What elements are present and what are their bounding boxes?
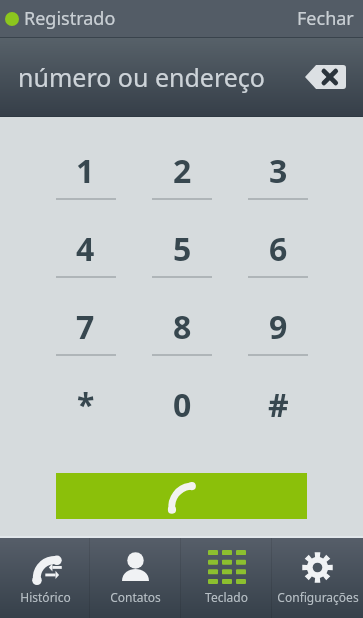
staticText: * xyxy=(77,383,95,427)
staticText: Fechar xyxy=(297,6,354,31)
staticText: Registrado xyxy=(24,6,116,31)
staticText: # xyxy=(268,383,289,427)
staticText: 7 xyxy=(76,305,95,349)
staticText: 6 xyxy=(269,227,288,271)
button[interactable]: Histórico xyxy=(0,538,90,618)
staticText: 5 xyxy=(173,227,192,271)
button[interactable]: 7 xyxy=(37,289,134,367)
staticText: Configurações xyxy=(277,589,359,605)
button[interactable]: 8 xyxy=(134,289,230,367)
button[interactable]: 5 xyxy=(134,211,230,289)
button[interactable]: Teclado xyxy=(181,538,272,618)
staticText: 8 xyxy=(173,305,192,349)
button[interactable]: Contatos xyxy=(90,538,181,618)
button[interactable]: 2 xyxy=(134,133,230,211)
staticText: Contatos xyxy=(110,589,161,605)
staticText: 0 xyxy=(173,383,192,427)
staticText: Teclado xyxy=(205,589,248,605)
button[interactable]: Configurações xyxy=(272,538,363,618)
staticText: 3 xyxy=(269,149,288,193)
button[interactable]: 9 xyxy=(230,289,326,367)
button[interactable]: * xyxy=(37,367,134,445)
button[interactable]: Fechar xyxy=(297,6,354,31)
staticText: Histórico xyxy=(20,589,71,605)
staticText: número ou endereço xyxy=(18,60,265,94)
button[interactable]: 0 xyxy=(134,367,230,445)
button[interactable]: 4 xyxy=(37,211,134,289)
staticText: 9 xyxy=(269,305,288,349)
staticText: 4 xyxy=(76,227,95,271)
button[interactable]: Chamar xyxy=(56,473,307,519)
button[interactable]: 1 xyxy=(37,133,134,211)
button[interactable]: # xyxy=(230,367,326,445)
button[interactable]: 3 xyxy=(230,133,326,211)
staticText: 2 xyxy=(173,149,192,193)
button[interactable]: 6 xyxy=(230,211,326,289)
staticText: 1 xyxy=(76,149,95,193)
button[interactable]: Apagar xyxy=(305,65,346,89)
